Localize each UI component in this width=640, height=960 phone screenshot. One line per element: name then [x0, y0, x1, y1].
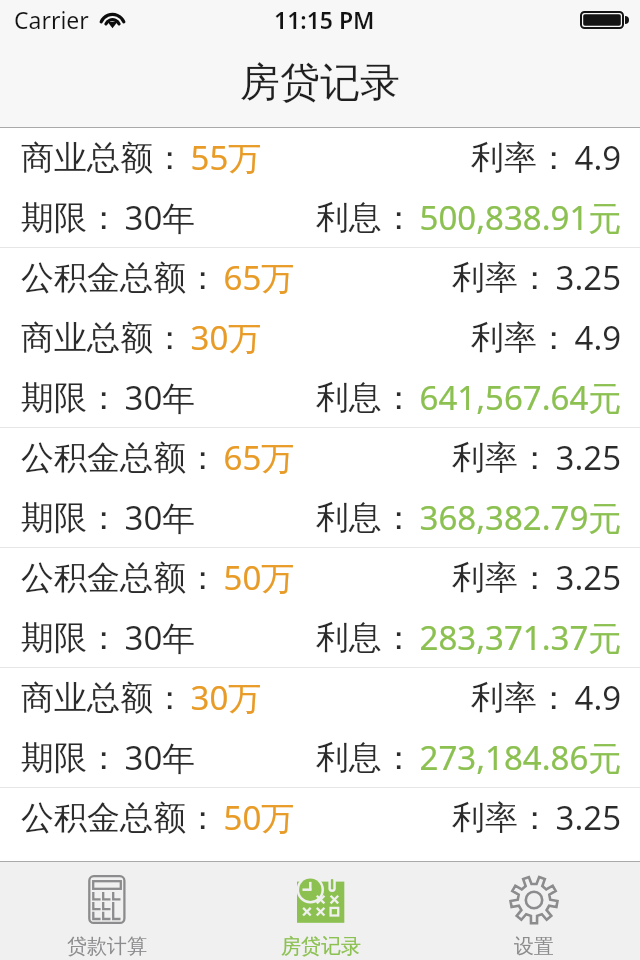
- staticText: 利率：: [452, 257, 551, 299]
- button[interactable]: 商业总额：: [0, 308, 640, 368]
- staticText: 期限：: [21, 737, 120, 779]
- button[interactable]: 贷款计算: [0, 862, 214, 960]
- staticText: 283,371.37元: [411, 615, 622, 660]
- staticText: 30万: [182, 315, 262, 360]
- staticText: 30年: [116, 495, 196, 540]
- staticText: 公积金总额：: [21, 257, 219, 299]
- button[interactable]: 房贷记录: [214, 862, 427, 960]
- staticText: 贷款计算: [67, 934, 147, 959]
- staticText: 利息：: [316, 377, 415, 419]
- staticText: 利息：: [316, 497, 415, 539]
- button[interactable]: 商业总额：: [0, 668, 640, 728]
- button[interactable]: 期限：: [0, 488, 640, 548]
- staticText: 368,382.79元: [411, 495, 622, 540]
- staticText: 期限：: [21, 377, 120, 419]
- staticText: 期限：: [21, 617, 120, 659]
- staticText: 55万: [182, 135, 262, 180]
- staticText: 公积金总额：: [21, 437, 219, 479]
- staticText: 公积金总额：: [21, 797, 219, 839]
- staticText: 4.9: [566, 675, 622, 720]
- button[interactable]: 期限：: [0, 728, 640, 788]
- staticText: 房贷记录: [281, 934, 361, 959]
- staticText: Carrier: [14, 4, 89, 35]
- button[interactable]: 期限：: [0, 368, 640, 428]
- staticText: 利息：: [316, 617, 415, 659]
- staticText: 500,838.91元: [411, 195, 622, 240]
- staticText: 商业总额：: [21, 137, 186, 179]
- staticText: 利息：: [316, 737, 415, 779]
- staticText: 4.9: [566, 135, 622, 180]
- staticText: 30年: [116, 195, 196, 240]
- staticText: 房贷记录: [240, 57, 400, 107]
- staticText: 商业总额：: [21, 677, 186, 719]
- staticText: 利息：: [316, 197, 415, 239]
- staticText: 期限：: [21, 497, 120, 539]
- staticText: 3.25: [547, 255, 622, 300]
- staticText: 50万: [215, 795, 295, 840]
- staticText: 50万: [215, 555, 295, 600]
- staticText: 利率：: [471, 677, 570, 719]
- other: 设置: [509, 875, 559, 925]
- staticText: 30年: [116, 735, 196, 780]
- staticText: 11:15 PM: [274, 4, 375, 35]
- staticText: 利率：: [452, 557, 551, 599]
- staticText: 利率：: [471, 137, 570, 179]
- button[interactable]: 设置: [427, 862, 640, 960]
- staticText: 30万: [182, 675, 262, 720]
- button[interactable]: 期限：: [0, 608, 640, 668]
- staticText: 4.9: [566, 315, 622, 360]
- staticText: 30年: [116, 375, 196, 420]
- staticText: 商业总额：: [21, 317, 186, 359]
- staticText: 3.25: [547, 555, 622, 600]
- other: 贷款计算: [88, 875, 126, 925]
- button[interactable]: 公积金总额：: [0, 248, 640, 308]
- button[interactable]: 商业总额：: [0, 128, 640, 188]
- staticText: 设置: [514, 934, 554, 959]
- staticText: 65万: [215, 255, 295, 300]
- staticText: 利率：: [452, 437, 551, 479]
- staticText: 273,184.86元: [411, 735, 622, 780]
- staticText: 30年: [116, 615, 196, 660]
- button[interactable]: 公积金总额：: [0, 788, 640, 848]
- button[interactable]: 公积金总额：: [0, 548, 640, 608]
- staticText: 3.25: [547, 435, 622, 480]
- button[interactable]: 公积金总额：: [0, 428, 640, 488]
- staticText: 公积金总额：: [21, 557, 219, 599]
- staticText: 期限：: [21, 197, 120, 239]
- other: 房贷记录: [295, 875, 347, 923]
- staticText: 65万: [215, 435, 295, 480]
- button[interactable]: 期限：: [0, 188, 640, 248]
- staticText: 利率：: [452, 797, 551, 839]
- staticText: 利率：: [471, 317, 570, 359]
- staticText: 641,567.64元: [411, 375, 622, 420]
- staticText: 3.25: [547, 795, 622, 840]
